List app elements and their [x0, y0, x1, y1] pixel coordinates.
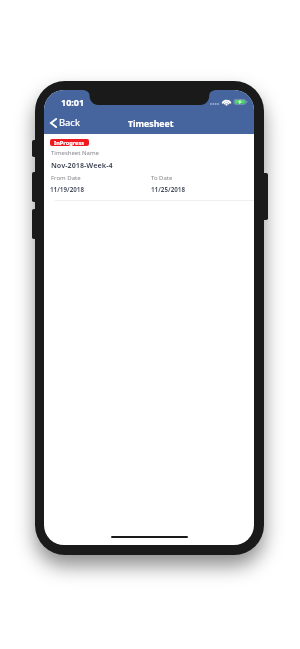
other: Status icons	[210, 96, 248, 107]
staticText: 11/19/2018	[50, 185, 85, 194]
button[interactable]: Back	[47, 114, 83, 131]
staticText: InProgress	[54, 139, 85, 146]
staticText: From Date	[51, 174, 81, 182]
staticText: Timesheet Name	[51, 149, 99, 157]
staticText: 11/25/2018	[151, 185, 186, 194]
staticText: Back	[59, 116, 80, 129]
staticText: Timesheet	[128, 118, 174, 130]
staticText: 10:01	[61, 96, 85, 108]
staticText: Nov-2018-Week-4	[51, 160, 113, 170]
staticText: To Date	[151, 174, 173, 182]
button[interactable]: InProgress	[50, 139, 89, 146]
